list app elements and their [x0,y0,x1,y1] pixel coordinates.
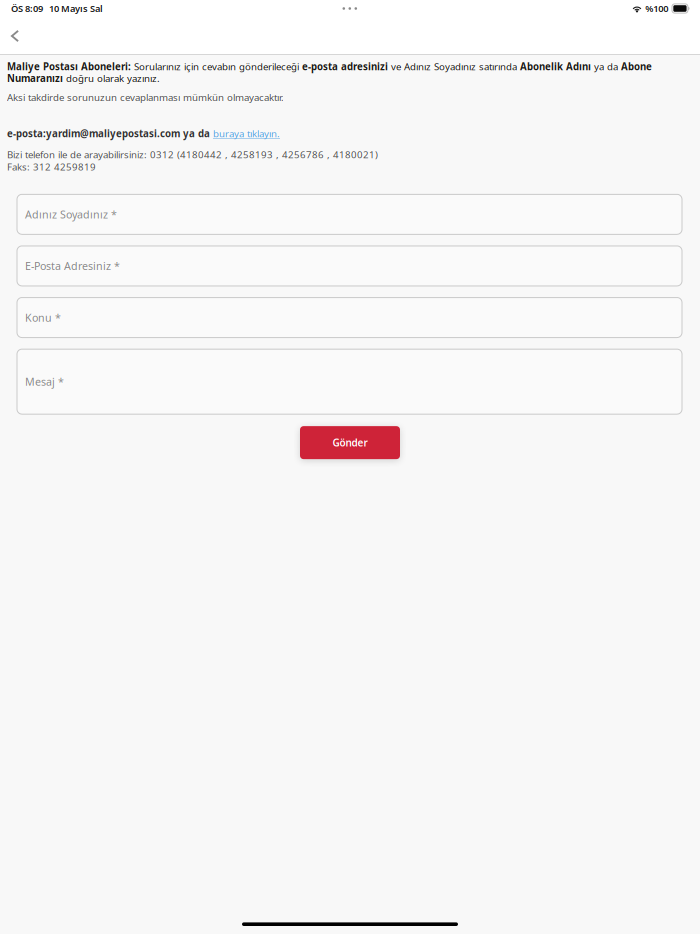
staticText: 10 Mayıs Sal [43,2,103,15]
staticText: e-posta:yardim@maliyepostasi.com ya da [7,127,213,140]
staticText: Maliye Postası Aboneleri: Sorularınız iç… [7,60,652,85]
button[interactable]: buraya tıklayın. [213,127,280,140]
staticText: E-Posta Adresiniz * [25,259,120,273]
staticText: ÖS 8:09 [11,2,43,15]
button[interactable]: E-Posta Adresiniz * [17,246,682,286]
button[interactable]: Adınız Soyadınız * [17,194,682,234]
staticText: Konu * [25,310,61,325]
staticText: Mesaj * [25,374,64,389]
staticText: Gönder [332,436,367,449]
button[interactable]: Gönder [300,426,400,459]
button[interactable]: Konu * [17,297,682,337]
button[interactable]: Mesaj * [17,349,682,414]
button[interactable]: Geri [0,21,30,51]
staticText: Aksi takdirde sorunuzun cevaplanması müm… [7,91,284,104]
staticText: buraya tıklayın. [213,127,280,140]
staticText: Bizi telefon ile de arayabilirsiniz: 031… [7,148,378,173]
staticText: Adınız Soyadınız * [25,207,117,222]
staticText: %100 [645,2,668,15]
